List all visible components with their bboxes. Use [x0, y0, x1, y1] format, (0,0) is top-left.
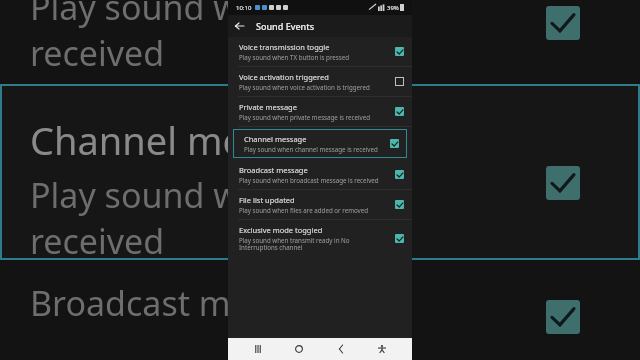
button[interactable]: Enabled	[390, 139, 399, 148]
button[interactable]: Exclusive mode toggled	[228, 220, 412, 257]
staticText: received	[30, 30, 165, 76]
button[interactable]: Enabled	[395, 234, 404, 243]
button[interactable]: Broadcast message	[228, 160, 412, 189]
button[interactable]: Back	[330, 338, 352, 360]
staticText: Voice transmission toggle	[239, 42, 330, 52]
staticText: Play sound when transmit ready in No Int…	[239, 236, 389, 252]
staticText: 39%	[387, 4, 399, 12]
button[interactable]: Home	[288, 338, 310, 360]
staticText: Broadcast message	[239, 165, 308, 175]
staticText: Play sound when	[30, 0, 302, 30]
staticText: Broadcast mes	[30, 280, 267, 326]
staticText: File list updated	[239, 195, 295, 205]
staticText: received	[30, 218, 165, 260]
button[interactable]: Private message	[228, 97, 412, 126]
staticText: Play sound when channel message is recei…	[244, 145, 378, 153]
staticText: Private message	[239, 102, 297, 112]
button[interactable]: Disabled	[395, 77, 404, 86]
staticText: Exclusive mode toggled	[239, 225, 323, 235]
staticText: Channel messa	[30, 114, 302, 166]
staticText: Voice activation triggered	[239, 72, 329, 82]
button[interactable]: Voice activation triggered	[228, 67, 412, 96]
button[interactable]: Enabled	[395, 170, 404, 179]
button[interactable]: Back	[228, 15, 250, 37]
button[interactable]: Enabled	[395, 47, 404, 56]
staticText: Play sound when files are added or remov…	[239, 206, 368, 214]
button[interactable]: Recents	[247, 338, 269, 360]
button[interactable]: Enabled	[395, 200, 404, 209]
button[interactable]: Voice transmission toggle	[228, 37, 412, 66]
staticText: Channel message	[244, 134, 307, 144]
button[interactable]: Channel message	[233, 129, 407, 158]
button[interactable]: Enabled	[395, 107, 404, 116]
staticText: Play sound when private message is recei…	[239, 113, 371, 121]
staticText: Play sound when voice activation is trig…	[239, 83, 370, 91]
staticText: Play sound when TX button is pressed	[239, 53, 350, 61]
staticText: 10:10	[236, 4, 252, 12]
staticText: Play sound when	[30, 172, 302, 218]
staticText: Sound Events	[256, 20, 315, 32]
button[interactable]: Accessibility	[371, 338, 393, 360]
button[interactable]: File list updated	[228, 190, 412, 219]
staticText: Play sound when	[30, 326, 302, 334]
staticText: Play sound when broadcast message is rec…	[239, 176, 379, 184]
